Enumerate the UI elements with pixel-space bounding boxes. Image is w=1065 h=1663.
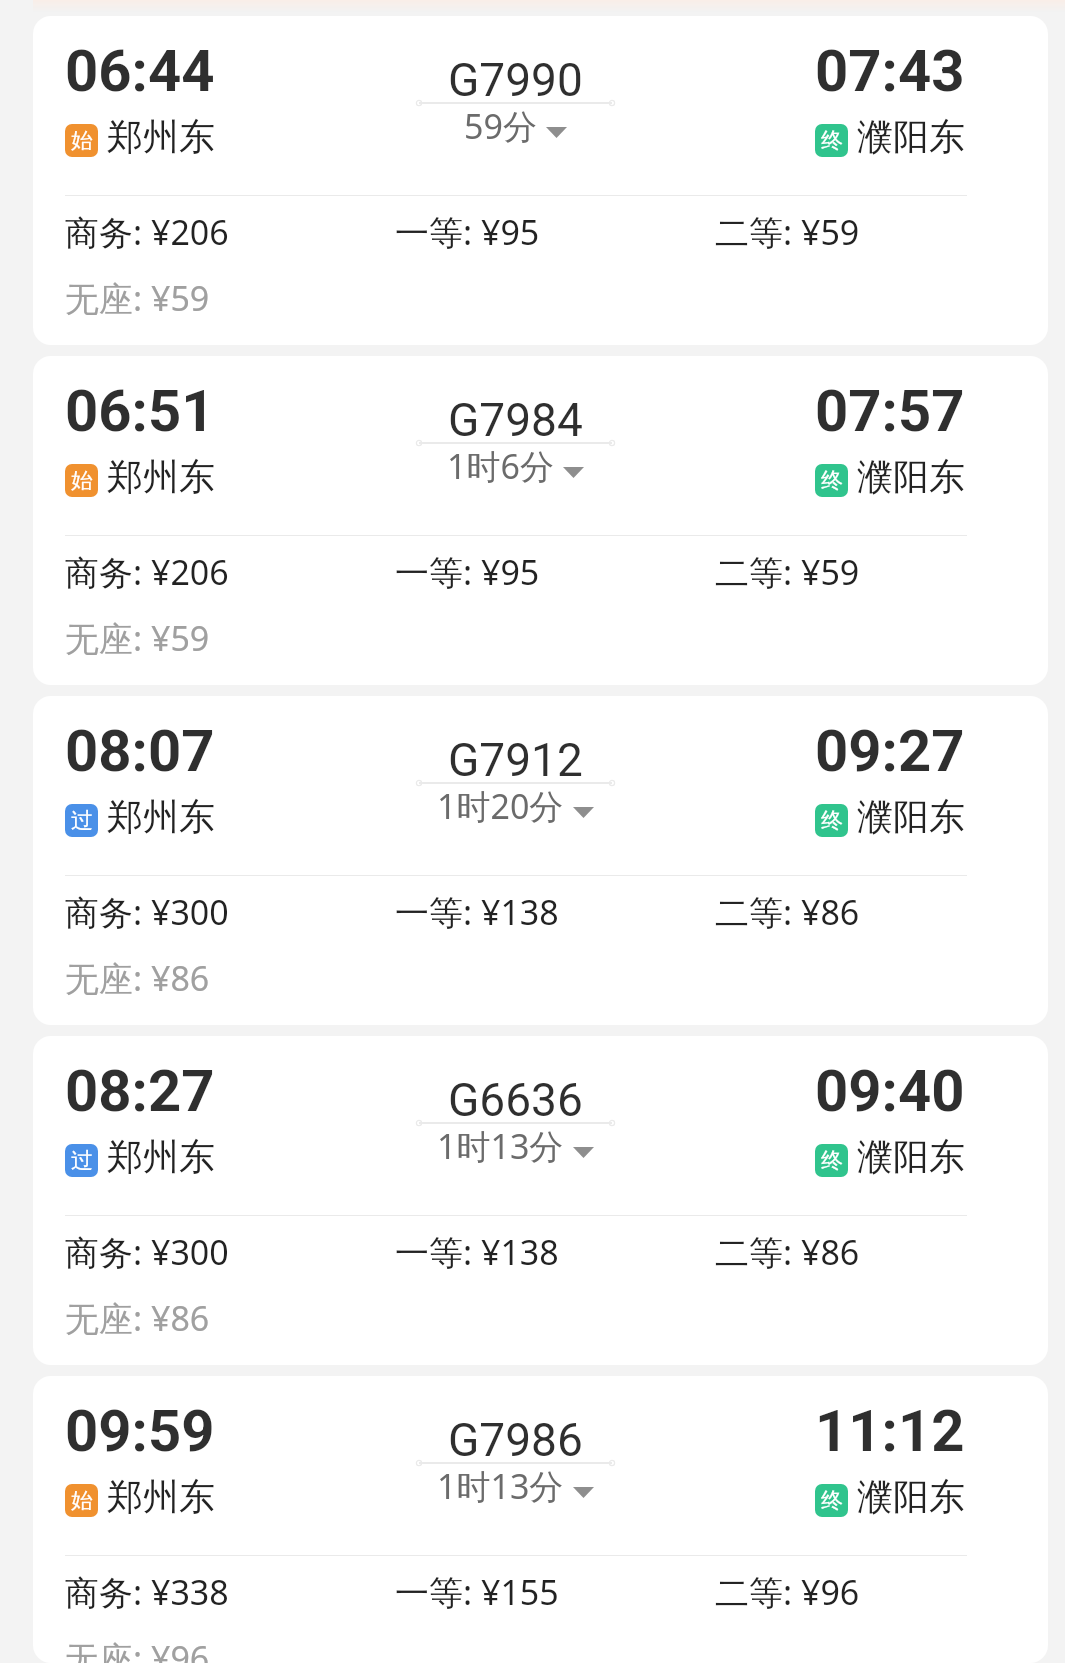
button[interactable]: 06:51 xyxy=(33,356,1048,685)
staticText: 一等: ¥155 xyxy=(395,1569,715,1615)
staticText: 始 xyxy=(71,467,93,495)
staticText: 终 xyxy=(821,1487,843,1515)
staticText: 终 xyxy=(821,807,843,835)
staticText: 二等: ¥59 xyxy=(715,209,860,255)
staticText: 终 xyxy=(821,1147,843,1175)
button[interactable]: Show stops for G7986 xyxy=(437,1463,594,1509)
staticText: 无座: ¥59 xyxy=(65,615,210,661)
staticText: 09:40 xyxy=(815,1057,965,1125)
staticText: 一等: ¥138 xyxy=(395,889,715,935)
staticText: 郑州东 xyxy=(107,1134,215,1179)
staticText: 过 xyxy=(71,1147,93,1175)
button[interactable]: Show stops for G7912 xyxy=(437,783,594,829)
staticText: 商务: ¥300 xyxy=(65,1229,395,1275)
staticText: 07:57 xyxy=(815,377,965,445)
staticText: 1时13分 xyxy=(437,1123,564,1169)
staticText: 濮阳东 xyxy=(857,794,965,839)
button[interactable]: Show stops for G7984 xyxy=(447,443,584,489)
staticText: 商务: ¥206 xyxy=(65,209,395,255)
staticText: 一等: ¥95 xyxy=(395,209,715,255)
button[interactable]: Show stops for G6636 xyxy=(437,1123,594,1169)
staticText: G7986 xyxy=(448,1413,583,1467)
staticText: 二等: ¥86 xyxy=(715,1229,860,1275)
staticText: 无座: ¥96 xyxy=(65,1635,210,1663)
staticText: 11:12 xyxy=(815,1397,965,1465)
button[interactable]: 08:07 xyxy=(33,696,1048,1025)
staticText: 濮阳东 xyxy=(857,454,965,499)
staticText: 二等: ¥96 xyxy=(715,1569,860,1615)
staticText: 过 xyxy=(71,807,93,835)
staticText: 商务: ¥206 xyxy=(65,549,395,595)
staticText: 1时13分 xyxy=(437,1463,564,1509)
staticText: 终 xyxy=(821,467,843,495)
staticText: G7912 xyxy=(448,733,583,787)
staticText: 08:27 xyxy=(65,1057,215,1125)
button[interactable]: 06:44 xyxy=(33,16,1048,345)
staticText: 濮阳东 xyxy=(857,1474,965,1519)
staticText: 07:43 xyxy=(815,37,965,105)
staticText: 郑州东 xyxy=(107,794,215,839)
staticText: 无座: ¥86 xyxy=(65,955,210,1001)
staticText: G7984 xyxy=(448,393,583,447)
staticText: 1时20分 xyxy=(437,783,564,829)
staticText: 06:51 xyxy=(65,377,215,445)
staticText: 1时6分 xyxy=(447,443,554,489)
staticText: 商务: ¥300 xyxy=(65,889,395,935)
staticText: 一等: ¥138 xyxy=(395,1229,715,1275)
staticText: 二等: ¥59 xyxy=(715,549,860,595)
staticText: 商务: ¥338 xyxy=(65,1569,395,1615)
staticText: 始 xyxy=(71,127,93,155)
staticText: 06:44 xyxy=(65,37,215,105)
staticText: 二等: ¥86 xyxy=(715,889,860,935)
button[interactable]: Show stops for G7990 xyxy=(464,103,567,149)
staticText: 濮阳东 xyxy=(857,114,965,159)
staticText: 59分 xyxy=(464,103,537,149)
staticText: 09:27 xyxy=(815,717,965,785)
button[interactable]: 09:59 xyxy=(33,1376,1048,1663)
staticText: 郑州东 xyxy=(107,454,215,499)
staticText: 郑州东 xyxy=(107,114,215,159)
staticText: 08:07 xyxy=(65,717,215,785)
staticText: 一等: ¥95 xyxy=(395,549,715,595)
staticText: 终 xyxy=(821,127,843,155)
staticText: 郑州东 xyxy=(107,1474,215,1519)
staticText: 濮阳东 xyxy=(857,1134,965,1179)
staticText: G7990 xyxy=(448,53,583,107)
staticText: 无座: ¥59 xyxy=(65,275,210,321)
staticText: 始 xyxy=(71,1487,93,1515)
button[interactable]: 08:27 xyxy=(33,1036,1048,1365)
staticText: G6636 xyxy=(448,1073,583,1127)
staticText: 09:59 xyxy=(65,1397,215,1465)
staticText: 无座: ¥86 xyxy=(65,1295,210,1341)
